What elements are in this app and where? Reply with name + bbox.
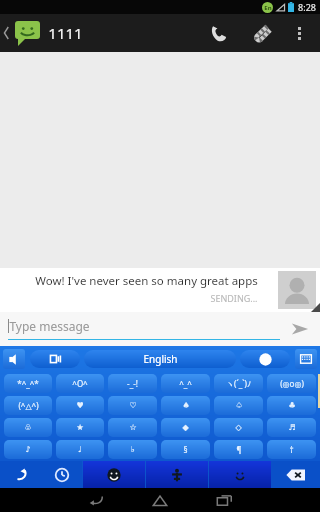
staticText: Wow! I've never seen so many great apps xyxy=(35,273,258,289)
staticText: ♤ xyxy=(235,401,243,410)
staticText: (◎o◎) xyxy=(280,378,304,389)
button[interactable]: ^O^ xyxy=(56,374,104,393)
staticText: ♪ xyxy=(25,445,31,454)
button[interactable]: ヽ(´_`)ﾉ xyxy=(214,374,263,393)
staticText: ♬ xyxy=(288,423,296,432)
staticText: ♡ xyxy=(129,401,137,410)
button[interactable]: ♠ xyxy=(161,396,210,415)
staticText: ¶ xyxy=(236,444,242,455)
staticText: ♩ xyxy=(78,445,82,454)
button[interactable]: ^_^ xyxy=(161,374,210,393)
button[interactable]: Laugh xyxy=(83,461,145,488)
button[interactable]: ☆ xyxy=(108,418,157,437)
button[interactable]: ★ xyxy=(56,418,104,437)
button[interactable]: Backspace xyxy=(271,461,320,488)
button[interactable]: Shrug xyxy=(146,461,208,488)
button[interactable]: Back xyxy=(64,488,128,512)
staticText: ^O^ xyxy=(72,378,88,389)
staticText: ★ xyxy=(76,423,84,432)
staticText: ◆ xyxy=(182,423,189,432)
button[interactable]: English xyxy=(84,350,236,368)
button[interactable]: ◇ xyxy=(214,418,263,437)
staticText: ♧ xyxy=(24,423,32,432)
button[interactable]: Attach xyxy=(240,14,284,52)
staticText: Type message xyxy=(9,318,90,334)
button[interactable]: † xyxy=(267,440,316,459)
button[interactable]: (◎o◎) xyxy=(267,374,316,393)
staticText: (^△^) xyxy=(18,400,39,411)
button[interactable]: ♩ xyxy=(56,440,104,459)
staticText: English xyxy=(143,352,178,366)
button[interactable]: ♭ xyxy=(108,440,157,459)
button[interactable]: Recent apps xyxy=(192,488,256,512)
button[interactable]: ♤ xyxy=(214,396,263,415)
staticText: SENDING... xyxy=(210,292,258,304)
staticText: ♠ xyxy=(182,401,190,410)
button[interactable]: Send xyxy=(280,312,320,346)
button[interactable]: Home xyxy=(128,488,192,512)
staticText: *^_^* xyxy=(17,378,39,389)
staticText: † xyxy=(289,444,294,455)
button[interactable]: Smile xyxy=(209,461,271,488)
button[interactable]: Undo xyxy=(0,461,41,488)
button[interactable]: (^△^) xyxy=(4,396,52,415)
staticText: 1111 xyxy=(48,23,83,43)
button[interactable]: ♬ xyxy=(267,418,316,437)
staticText: 8:28 xyxy=(298,1,316,13)
button[interactable]: Voice input xyxy=(3,349,25,369)
staticText: § xyxy=(183,444,188,455)
button[interactable]: Emoticons xyxy=(240,350,290,368)
staticText: ♣ xyxy=(288,401,296,410)
button[interactable]: Keyboard layout xyxy=(295,349,317,369)
staticText: ヽ(´_`)ﾉ xyxy=(226,378,251,389)
staticText: ◇ xyxy=(235,423,242,432)
button[interactable]: Recent xyxy=(41,461,82,488)
button[interactable]: Input mode xyxy=(30,350,80,368)
staticText: ☆ xyxy=(129,423,137,432)
button[interactable]: ♧ xyxy=(4,418,52,437)
staticText: ♥ xyxy=(76,401,84,410)
button[interactable]: ◆ xyxy=(161,418,210,437)
button[interactable]: More options xyxy=(284,18,314,48)
staticText: ^_^ xyxy=(179,378,192,389)
button[interactable]: *^_^* xyxy=(4,374,52,393)
button[interactable]: Call xyxy=(196,14,240,52)
button[interactable]: ♣ xyxy=(267,396,316,415)
staticText: -_-! xyxy=(127,378,138,389)
staticText: En xyxy=(264,4,272,12)
staticText: ♭ xyxy=(131,445,135,454)
button[interactable]: § xyxy=(161,440,210,459)
button[interactable]: -_-! xyxy=(108,374,157,393)
button[interactable]: ¶ xyxy=(214,440,263,459)
button[interactable]: ♡ xyxy=(108,396,157,415)
button[interactable]: ♥ xyxy=(56,396,104,415)
button[interactable]: ♪ xyxy=(4,440,52,459)
